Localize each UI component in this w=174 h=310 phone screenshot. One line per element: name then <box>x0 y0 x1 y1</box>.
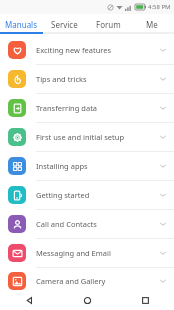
button[interactable]: Installing apps <box>0 152 174 180</box>
staticText: Installing apps <box>36 161 158 171</box>
button[interactable]: Messaging and Email <box>0 239 174 267</box>
button[interactable]: Service <box>43 14 86 34</box>
staticText: Getting started <box>36 190 158 200</box>
button[interactable]: Forum <box>86 14 130 34</box>
button[interactable]: Getting started <box>0 181 174 209</box>
other: Expand <box>158 276 168 286</box>
staticText: 4:58 PM <box>148 3 171 11</box>
button[interactable]: Me <box>130 14 174 34</box>
other: Expand <box>158 103 168 113</box>
button[interactable]: Back <box>0 290 58 310</box>
other: Expand <box>158 45 168 55</box>
staticText: Tips and tricks <box>36 74 158 84</box>
staticText: Manuals <box>5 19 38 30</box>
staticText: Service <box>51 19 78 30</box>
staticText: Exciting new features <box>36 45 158 55</box>
staticText: Forum <box>96 19 121 30</box>
button[interactable]: Transferring data <box>0 94 174 122</box>
staticText: Me <box>146 19 158 30</box>
button[interactable]: Recent apps <box>116 290 174 310</box>
staticText: First use and initial setup <box>36 132 158 142</box>
button[interactable]: Manuals <box>0 14 43 34</box>
other: Expand <box>158 74 168 84</box>
button[interactable]: Call and Contacts <box>0 210 174 238</box>
staticText: Transferring data <box>36 103 158 113</box>
button[interactable]: Exciting new features <box>0 36 174 64</box>
staticText: Call and Contacts <box>36 219 158 229</box>
other: Expand <box>158 132 168 142</box>
other: Expand <box>158 190 168 200</box>
other: Expand <box>158 161 168 171</box>
staticText: Messaging and Email <box>36 248 158 258</box>
other: Expand <box>158 248 168 258</box>
button[interactable]: Camera and Gallery <box>0 268 174 293</box>
staticText: Camera and Gallery <box>36 276 158 286</box>
other: Expand <box>158 219 168 229</box>
button[interactable]: Tips and tricks <box>0 65 174 93</box>
button[interactable]: First use and initial setup <box>0 123 174 151</box>
button[interactable]: Home <box>58 290 116 310</box>
